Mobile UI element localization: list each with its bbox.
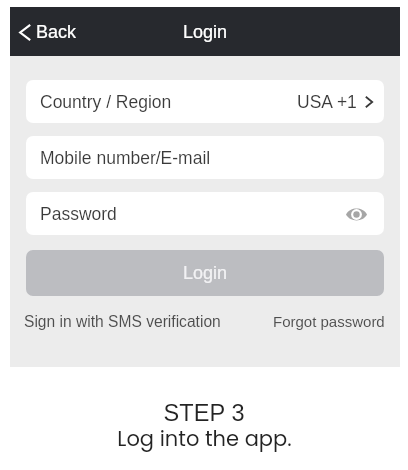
button[interactable]: Country / Region bbox=[26, 80, 384, 123]
staticText: Country / Region bbox=[40, 92, 172, 112]
staticText: Login bbox=[183, 22, 228, 42]
button[interactable]: Sign in with SMS verification bbox=[24, 313, 221, 330]
staticText: Log into the app. bbox=[117, 424, 292, 453]
staticText: Password bbox=[40, 204, 117, 224]
staticText: Login bbox=[183, 263, 228, 283]
button[interactable]: Back bbox=[13, 17, 83, 47]
button[interactable]: Forgot password bbox=[273, 313, 385, 330]
button[interactable]: Show password bbox=[343, 201, 369, 227]
button[interactable]: Mobile number/E-mail bbox=[26, 136, 384, 179]
staticText: USA +1 bbox=[297, 92, 357, 112]
staticText: Back bbox=[36, 22, 77, 42]
button[interactable]: Password bbox=[26, 192, 384, 235]
button[interactable]: Login bbox=[26, 250, 384, 296]
staticText: STEP 3 bbox=[163, 400, 245, 426]
staticText: Mobile number/E-mail bbox=[40, 148, 211, 168]
